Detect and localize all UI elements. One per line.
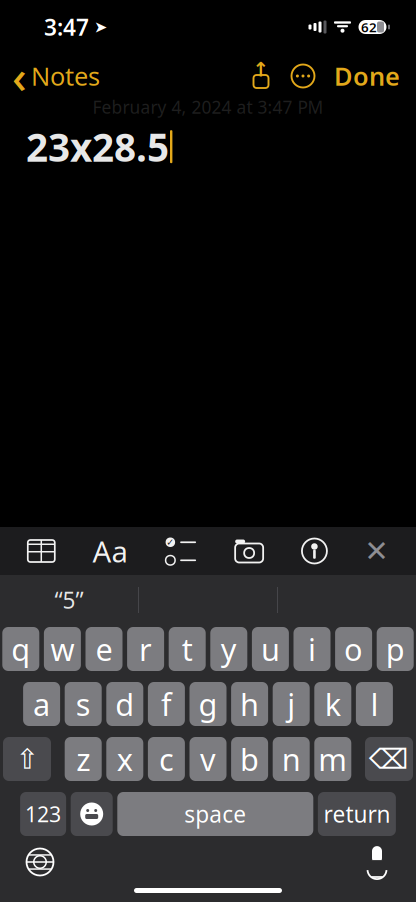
button[interactable]: o bbox=[335, 627, 372, 671]
button[interactable]: h bbox=[231, 682, 268, 726]
button[interactable]: l bbox=[356, 682, 393, 726]
staticText: February 4, 2024 at 3:47 PM bbox=[92, 95, 323, 118]
button[interactable]: p bbox=[377, 627, 414, 671]
staticText: m bbox=[318, 739, 347, 779]
staticText: ✕ bbox=[364, 534, 389, 568]
staticText: 123 bbox=[25, 800, 61, 828]
staticText: 62 bbox=[361, 18, 377, 36]
button[interactable]: 123 bbox=[20, 792, 66, 836]
staticText: y bbox=[221, 629, 237, 669]
button[interactable]: q bbox=[2, 627, 39, 671]
staticText: c bbox=[159, 739, 174, 779]
staticText: space bbox=[184, 799, 246, 829]
staticText: s bbox=[76, 684, 91, 724]
staticText: i bbox=[308, 629, 316, 669]
button[interactable]: ⇧ bbox=[3, 737, 51, 781]
button[interactable]: n bbox=[273, 737, 310, 781]
button[interactable]: Table bbox=[17, 529, 65, 572]
button[interactable]: y bbox=[210, 627, 247, 671]
button[interactable]: Camera bbox=[224, 529, 274, 573]
staticText: r bbox=[139, 629, 152, 669]
button[interactable]: b bbox=[231, 737, 268, 781]
staticText: ↑ bbox=[252, 58, 269, 81]
staticText: e bbox=[95, 629, 112, 669]
button[interactable]: g bbox=[189, 682, 226, 726]
button[interactable]: Switch keyboard bbox=[16, 838, 64, 886]
button[interactable]: u bbox=[252, 627, 289, 671]
button[interactable]: z bbox=[65, 737, 102, 781]
button[interactable]: ⌫ bbox=[365, 737, 413, 781]
staticText: u bbox=[261, 629, 280, 669]
staticText: ➤ bbox=[94, 18, 107, 36]
staticText: b bbox=[240, 739, 259, 779]
button[interactable]: Checklist bbox=[155, 528, 207, 573]
staticText: n bbox=[282, 739, 301, 779]
button[interactable]: Markup bbox=[291, 528, 337, 574]
button[interactable]: Emoji bbox=[71, 792, 113, 836]
button[interactable]: Close keyboard bbox=[355, 529, 399, 573]
staticText: w bbox=[50, 629, 74, 669]
button[interactable]: k bbox=[314, 682, 351, 726]
staticText: Aa bbox=[93, 531, 128, 570]
button[interactable]: Done bbox=[326, 51, 416, 101]
staticText: “5” bbox=[54, 585, 83, 615]
button[interactable]: f bbox=[148, 682, 185, 726]
button[interactable]: m bbox=[314, 737, 351, 781]
staticText: x bbox=[117, 739, 133, 779]
staticText: h bbox=[240, 684, 259, 724]
button[interactable]: Share bbox=[242, 59, 280, 92]
button[interactable]: v bbox=[189, 737, 226, 781]
button[interactable]: return bbox=[318, 792, 396, 836]
button[interactable]: s bbox=[65, 682, 102, 726]
button[interactable]: j bbox=[273, 682, 310, 726]
button[interactable]: t bbox=[169, 627, 206, 671]
button[interactable]: d bbox=[106, 682, 143, 726]
button[interactable]: x bbox=[106, 737, 143, 781]
staticText: Done bbox=[334, 59, 400, 93]
button[interactable]: Dictation bbox=[354, 836, 400, 888]
staticText: ✓ bbox=[166, 537, 174, 548]
button[interactable]: space bbox=[117, 792, 313, 836]
staticText: ‹ bbox=[12, 46, 27, 106]
staticText: l bbox=[370, 684, 378, 724]
button[interactable]: “5” bbox=[0, 577, 138, 623]
staticText: a bbox=[33, 684, 50, 724]
staticText: t bbox=[182, 629, 193, 669]
button[interactable]: a bbox=[23, 682, 60, 726]
staticText: g bbox=[198, 684, 217, 724]
staticText: ⇧ bbox=[15, 743, 38, 775]
button[interactable]: r bbox=[127, 627, 164, 671]
staticText: return bbox=[323, 799, 390, 829]
button[interactable]: c bbox=[148, 737, 185, 781]
staticText: f bbox=[161, 684, 172, 724]
button[interactable]: i bbox=[293, 627, 330, 671]
staticText: j bbox=[287, 684, 295, 724]
staticText: z bbox=[76, 739, 90, 779]
staticText: d bbox=[115, 684, 134, 724]
staticText: ⌫ bbox=[369, 743, 409, 775]
button[interactable]: e bbox=[85, 627, 122, 671]
staticText: Notes bbox=[31, 59, 100, 93]
button[interactable]: Text format bbox=[83, 521, 138, 580]
staticText: k bbox=[325, 684, 341, 724]
staticText: 3:47 bbox=[44, 12, 89, 42]
staticText: 23x28.5 bbox=[26, 121, 169, 172]
button[interactable]: ‹ bbox=[0, 40, 100, 112]
button[interactable]: w bbox=[44, 627, 81, 671]
button[interactable]: More options bbox=[280, 60, 326, 92]
staticText: v bbox=[200, 739, 216, 779]
staticText: q bbox=[11, 629, 30, 669]
staticText: o bbox=[344, 629, 363, 669]
staticText: p bbox=[386, 629, 405, 669]
